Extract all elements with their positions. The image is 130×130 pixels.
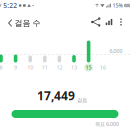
staticText: 목표 6,000 (95, 120, 119, 128)
staticText: 10 (27, 64, 33, 71)
staticText: 11 (42, 64, 48, 71)
staticText: 15% (112, 2, 122, 9)
staticText: 15 (86, 64, 92, 71)
staticText: 16 (100, 64, 106, 71)
staticText: 9 (14, 64, 17, 71)
button[interactable]: More options (115, 15, 127, 29)
staticText: 17,449 (37, 87, 75, 103)
button[interactable]: Back (3, 15, 17, 31)
staticText: 걸음 수 (14, 18, 40, 28)
staticText: 12 (56, 64, 62, 71)
staticText: 8 (0, 64, 2, 71)
staticText: 6,000 (109, 47, 122, 55)
staticText: 13 (71, 64, 77, 71)
staticText: 5:22 (3, 1, 17, 10)
staticText: 걸음 (77, 97, 87, 103)
button[interactable]: Chart view (103, 15, 115, 29)
button[interactable]: Share (90, 15, 102, 29)
